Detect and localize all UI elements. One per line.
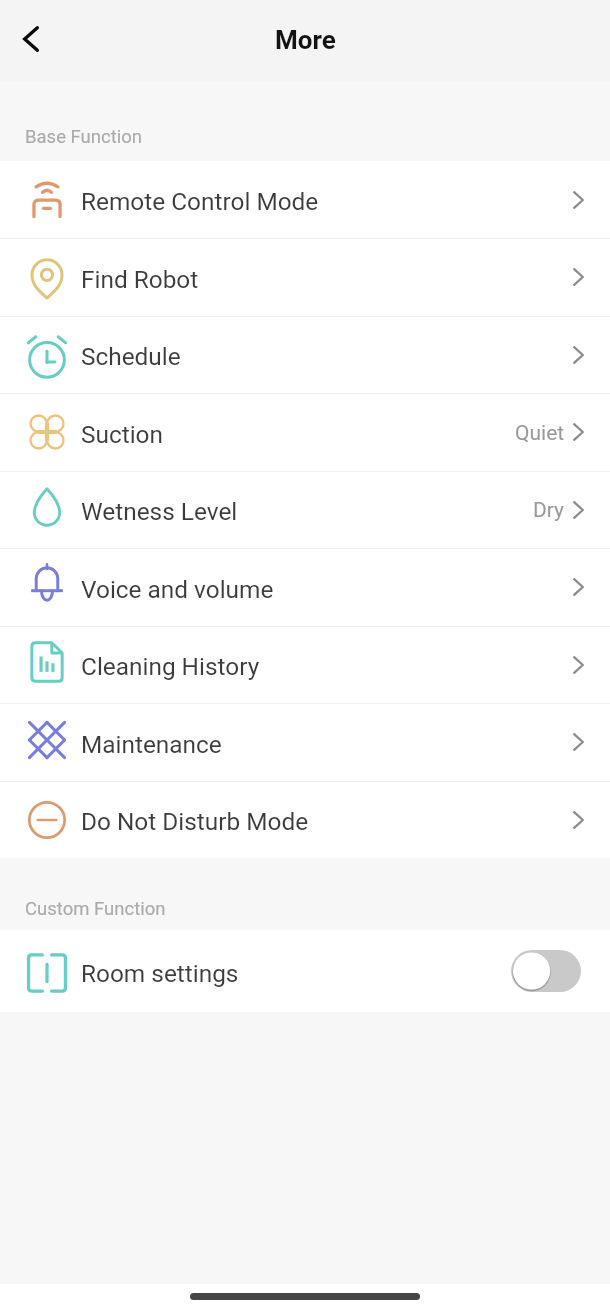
staticText: Maintenance <box>81 730 222 759</box>
staticText: Quiet <box>515 421 565 446</box>
staticText: Find Robot <box>81 265 199 294</box>
button[interactable]: Do Not Disturb Mode <box>0 781 610 858</box>
staticText: Cleaning History <box>81 652 260 681</box>
staticText: Dry <box>533 498 565 523</box>
button[interactable]: Back <box>5 13 57 65</box>
staticText: Voice and volume <box>81 575 274 604</box>
staticText: Do Not Disturb Mode <box>81 807 309 836</box>
button[interactable]: Suction <box>0 393 610 471</box>
button[interactable]: Remote Control Mode <box>0 161 610 238</box>
button[interactable]: Wetness Level <box>0 471 610 548</box>
button[interactable]: Room settings <box>0 930 610 1012</box>
staticText: Remote Control Mode <box>81 187 319 216</box>
staticText: Room settings <box>81 959 239 988</box>
staticText: Suction <box>81 420 163 449</box>
button[interactable]: Find Robot <box>0 238 610 316</box>
button[interactable]: Cleaning History <box>0 626 610 703</box>
staticText: Custom Function <box>25 898 166 920</box>
button[interactable]: Schedule <box>0 316 610 393</box>
button[interactable]: Voice and volume <box>0 548 610 626</box>
button[interactable]: Room settings toggle <box>511 950 581 992</box>
staticText: Wetness Level <box>81 497 238 526</box>
button[interactable]: Maintenance <box>0 703 610 781</box>
staticText: Base Function <box>25 126 142 148</box>
staticText: Schedule <box>81 342 181 371</box>
staticText: More <box>275 25 336 55</box>
